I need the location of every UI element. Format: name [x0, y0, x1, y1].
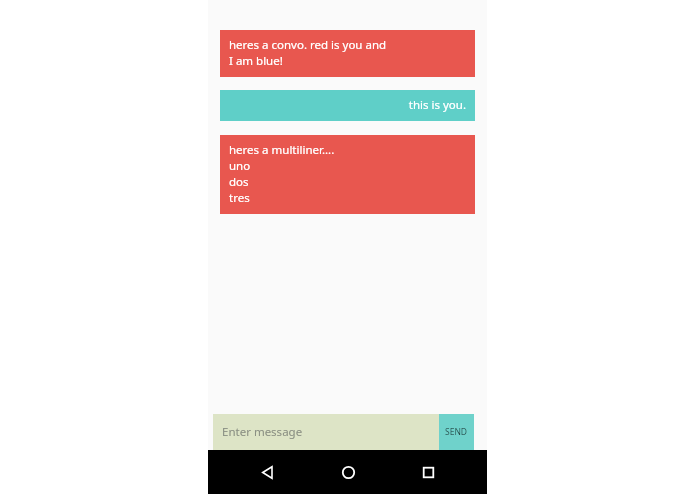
staticText: heres a convo. red is you and [229, 37, 387, 53]
staticText: tres [229, 190, 250, 206]
staticText: SEND [445, 426, 468, 438]
staticText: I am blue! [229, 53, 283, 69]
button[interactable]: Enter message [213, 414, 439, 450]
staticText: Enter message [222, 424, 303, 440]
staticText: this is you. [408, 97, 466, 113]
button[interactable]: Back [245, 450, 289, 494]
staticText: dos [229, 174, 249, 190]
button[interactable]: heres a convo. red is you and [220, 30, 475, 77]
button[interactable]: Home [326, 450, 370, 494]
staticText: heres a multiliner.... [229, 142, 335, 158]
button[interactable]: Recent apps [406, 450, 450, 494]
staticText: uno [229, 158, 251, 174]
button[interactable]: SEND [439, 414, 474, 450]
button[interactable]: this is you. [220, 90, 475, 121]
button[interactable]: heres a multiliner.... [220, 135, 475, 214]
